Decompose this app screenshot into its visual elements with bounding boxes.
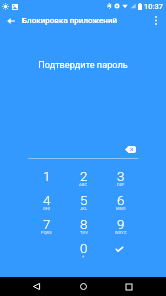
staticText: 2 [80, 168, 88, 184]
button[interactable]: Back [24, 277, 48, 296]
staticText: 0 [80, 240, 88, 256]
button[interactable]: 9 [102, 216, 139, 240]
button[interactable]: Backspace [120, 141, 141, 158]
button[interactable]: Recent apps [117, 277, 141, 296]
staticText: PQRS [41, 230, 52, 235]
button[interactable]: Home [71, 277, 95, 296]
button[interactable]: 0 [65, 240, 102, 264]
button[interactable]: 8 [65, 216, 102, 240]
staticText: Блокировка приложений [22, 16, 118, 25]
staticText: 4 [43, 192, 51, 208]
staticText: WXYZ [115, 230, 127, 235]
button[interactable]: 7 [28, 216, 65, 240]
button[interactable]: 2 [65, 168, 102, 192]
staticText: 9 [117, 216, 125, 232]
staticText: + [82, 254, 85, 259]
button[interactable]: 5 [65, 192, 102, 216]
staticText: 7 [43, 216, 51, 232]
button[interactable]: 6 [102, 192, 139, 216]
button[interactable]: 3 [102, 168, 139, 192]
staticText: MNO [116, 206, 126, 211]
staticText: 1 [43, 168, 51, 184]
staticText: 6 [117, 192, 125, 208]
staticText: Подтвердите пароль [0, 59, 166, 70]
staticText: 10:37 [144, 2, 164, 11]
button[interactable]: Back [0, 11, 22, 30]
staticText: TUV [80, 230, 88, 235]
staticText: JKL [80, 206, 88, 211]
button[interactable]: Confirm [102, 240, 139, 264]
button[interactable]: 4 [28, 192, 65, 216]
staticText: GHI [43, 206, 51, 211]
button[interactable]: 1 [28, 168, 65, 192]
staticText: 3 [117, 168, 125, 184]
staticText: 5 [80, 192, 88, 208]
button[interactable]: More options [146, 11, 166, 30]
staticText: DEF [117, 182, 125, 187]
staticText: ABC [79, 182, 88, 187]
staticText: 8 [80, 216, 88, 232]
